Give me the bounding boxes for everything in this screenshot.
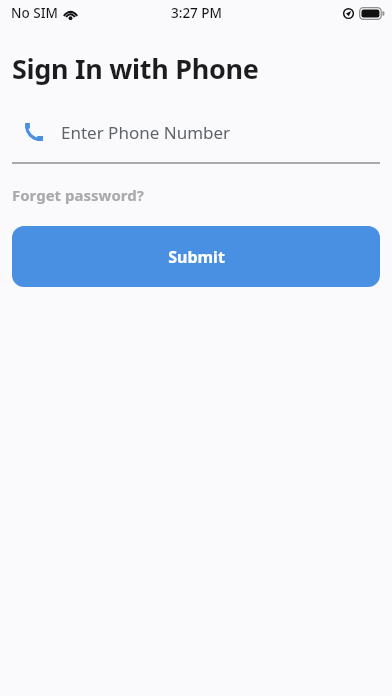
button[interactable]: Submit <box>12 226 380 287</box>
button[interactable]: Forget password? <box>12 185 144 205</box>
staticText: Submit <box>168 246 225 268</box>
staticText: Enter Phone Number <box>61 121 231 144</box>
other: Phone <box>23 121 45 143</box>
staticText: Sign In with Phone <box>12 50 259 87</box>
button[interactable]: Phone <box>0 111 392 153</box>
staticText: Forget password? <box>12 185 144 205</box>
staticText: No SIM <box>11 4 58 22</box>
staticText: 3:27 PM <box>171 4 222 22</box>
